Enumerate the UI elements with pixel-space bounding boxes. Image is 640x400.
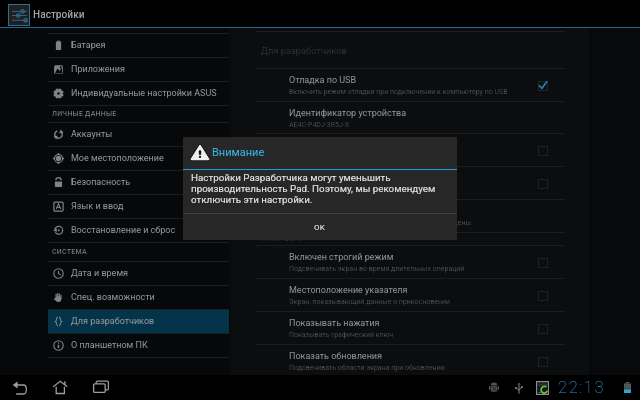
staticText: Отладка по USB (289, 75, 357, 86)
staticText: Дата и время (71, 268, 128, 279)
button[interactable]: Отладка по USB (256, 69, 565, 101)
staticText: Показывать графический ключ (289, 331, 394, 339)
button[interactable]: Settings (8, 4, 30, 26)
staticText: Язык и ввод (71, 201, 124, 212)
staticText: ИНТЕРФЕЙС (261, 235, 303, 243)
staticText: Батарея (71, 40, 106, 51)
staticText: Резервные копии рабочего стола сейчас не… (289, 219, 473, 227)
staticText: Показывать нажатия (289, 318, 380, 329)
staticText: Пароль резервного копирования (289, 206, 430, 217)
button[interactable]: Восстановление и сброс (48, 219, 229, 242)
button[interactable]: Местоположение указателя (256, 279, 565, 311)
staticText: СИСТЕМА (52, 248, 87, 256)
button[interactable]: Защита данных (256, 134, 565, 166)
staticText: Подсвечивать экран во время длительных о… (289, 265, 465, 273)
staticText: Показать обновления (289, 351, 382, 362)
button[interactable]: Пароль резервного копирования (256, 200, 565, 232)
button[interactable]: Идентификатор устройства (256, 102, 565, 134)
staticText: Для разработчиков (261, 45, 347, 56)
staticText: Приложения (71, 64, 125, 75)
button[interactable]: Recent apps (89, 377, 107, 395)
staticText: Безопасность (71, 177, 131, 188)
button[interactable]: Безопасность (48, 171, 229, 194)
button[interactable]: Батарея (48, 34, 229, 57)
staticText: Мое местоположение (71, 153, 164, 164)
staticText: Фиктивные местоположения (289, 173, 413, 184)
button[interactable]: Аккаунты (48, 123, 229, 146)
staticText: Восстановление и сброс (71, 225, 176, 236)
staticText: Настройки Разработчика могут уменьшить п… (191, 172, 451, 205)
staticText: Настройки (33, 7, 85, 20)
staticText: Включен строгий режим (289, 252, 394, 263)
staticText: Идентификатор устройства (289, 108, 407, 119)
button[interactable]: Внимание (183, 137, 457, 240)
staticText: OK (314, 223, 326, 232)
staticText: Внимание (212, 146, 265, 159)
staticText: Подсвечивать области экрана при обновлен… (289, 364, 445, 372)
button[interactable]: Язык и ввод (48, 195, 229, 218)
staticText: Включить режим отладки при подключении к… (289, 88, 508, 96)
staticText: Для разработчиков (71, 316, 155, 327)
staticText: Разрешить фиктивные местоположения (289, 186, 423, 194)
button[interactable]: Дата и время (48, 262, 229, 285)
button[interactable]: Приложения (48, 58, 229, 81)
button[interactable]: Home (51, 377, 69, 395)
button[interactable]: О планшетном ПК (48, 334, 229, 357)
button[interactable]: Для разработчиков (48, 310, 229, 333)
staticText: Экран, показывающий данные о прикосновен… (289, 298, 451, 306)
button[interactable]: Мое местоположение (48, 147, 229, 170)
button[interactable]: Включен строгий режим (256, 246, 565, 278)
button[interactable]: Показывать нажатия (256, 312, 565, 344)
staticText: Аккаунты (71, 129, 113, 140)
button[interactable]: Показать обновления (256, 345, 565, 377)
staticText: ЛИЧНЫЕ ДАННЫЕ (52, 110, 117, 118)
button[interactable]: Спец. возможности (48, 286, 229, 309)
staticText: 22:13 (558, 378, 606, 395)
button[interactable]: OK (183, 214, 457, 240)
staticText: AE4C-P4DJ-3R5J-X (289, 121, 350, 129)
staticText: Индивидуальные настройки ASUS (71, 88, 217, 99)
button[interactable]: Back (11, 377, 29, 395)
button[interactable]: Фиктивные местоположения (256, 167, 565, 199)
button[interactable]: Индивидуальные настройки ASUS (48, 82, 229, 105)
staticText: О планшетном ПК (71, 340, 148, 351)
staticText: Спец. возможности (71, 292, 155, 303)
staticText: Местоположение указателя (289, 285, 408, 296)
